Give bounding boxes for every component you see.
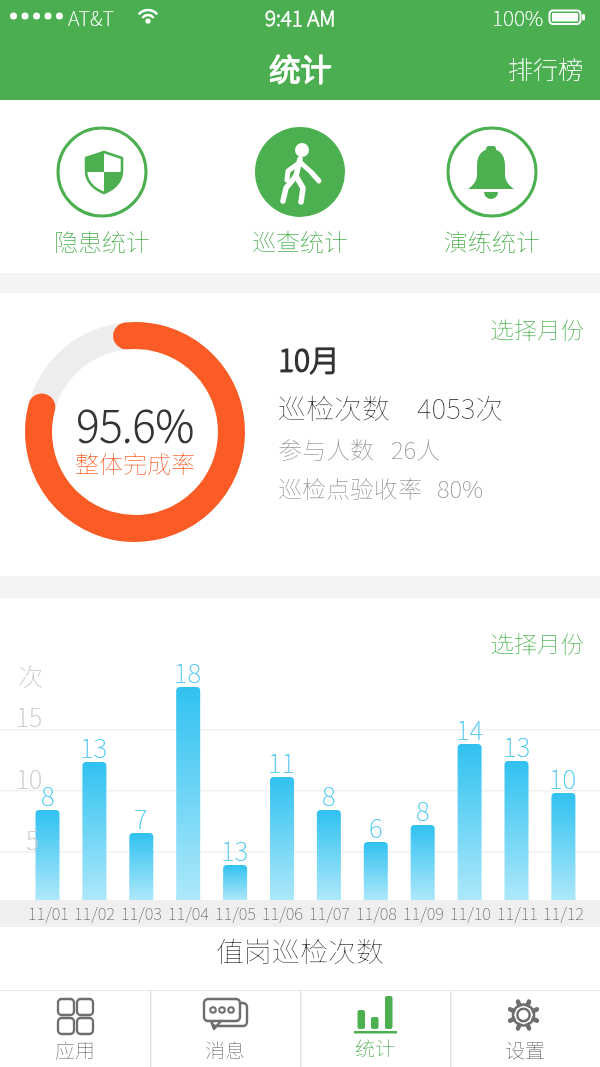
staticText: 巡查统计 bbox=[252, 223, 348, 258]
staticText: 11/09 bbox=[403, 901, 444, 925]
staticText: 11/11 bbox=[497, 901, 538, 925]
staticText: 选择月份 bbox=[490, 312, 584, 346]
staticText: 11/03 bbox=[121, 901, 162, 925]
staticText: 8 bbox=[41, 776, 55, 814]
staticText: 10 bbox=[549, 759, 577, 797]
staticText: 8 bbox=[322, 776, 336, 814]
staticText: 18 bbox=[174, 653, 202, 691]
staticText: 统计 bbox=[269, 46, 331, 91]
staticText: 9:41 AM bbox=[265, 2, 336, 32]
staticText: 巡检次数 bbox=[278, 387, 391, 428]
staticText: 11 bbox=[268, 743, 296, 781]
staticText: 11/10 bbox=[450, 901, 491, 925]
staticText: 巡检点验收率 bbox=[278, 470, 422, 505]
staticText: 隐患统计 bbox=[54, 223, 150, 258]
staticText: 参与人数 bbox=[278, 431, 374, 466]
staticText: 7 bbox=[134, 799, 148, 837]
staticText: 14 bbox=[456, 710, 484, 748]
staticText: 演练统计 bbox=[444, 223, 540, 258]
staticText: 95.6% bbox=[77, 391, 195, 451]
staticText: 11/08 bbox=[356, 901, 397, 925]
staticText: 15 bbox=[16, 698, 43, 734]
staticText: 95.6% bbox=[76, 391, 194, 451]
staticText: 10月 bbox=[278, 336, 340, 379]
staticText: 13 bbox=[221, 831, 249, 869]
staticText: 选择月份 bbox=[490, 626, 584, 660]
staticText: 统计 bbox=[269, 45, 331, 90]
staticText: 13 bbox=[80, 728, 108, 766]
staticText: 5 bbox=[26, 821, 40, 857]
staticText: 11/07 bbox=[309, 901, 350, 925]
staticText: 13 bbox=[503, 727, 531, 765]
staticText: 11/05 bbox=[215, 901, 256, 925]
staticText: 11/02 bbox=[74, 901, 115, 925]
staticText: 值岗巡检次数 bbox=[216, 930, 385, 971]
staticText: 统计 bbox=[355, 1033, 395, 1062]
staticText: 8 bbox=[416, 791, 430, 829]
staticText: 排行榜 bbox=[508, 50, 584, 86]
staticText: 11/01 bbox=[28, 901, 69, 925]
staticText: 26人 bbox=[391, 431, 441, 466]
staticText: 次 bbox=[18, 657, 44, 693]
staticText: 整体完成率 bbox=[75, 445, 195, 480]
staticText: AT&T bbox=[68, 3, 114, 32]
staticText: 11/04 bbox=[168, 901, 209, 925]
staticText: 应用 bbox=[55, 1035, 95, 1064]
staticText: 消息 bbox=[205, 1035, 245, 1064]
staticText: 6 bbox=[369, 808, 383, 846]
staticText: 11/12 bbox=[543, 901, 584, 925]
staticText: 11/06 bbox=[262, 901, 303, 925]
staticText: 10 bbox=[16, 760, 43, 796]
staticText: 设置 bbox=[505, 1035, 545, 1064]
staticText: 95.6% bbox=[76, 392, 194, 452]
staticText: 4053次 bbox=[417, 387, 504, 428]
staticText: 100% bbox=[492, 2, 544, 32]
staticText: 10月 bbox=[278, 337, 340, 380]
staticText: 80% bbox=[437, 470, 484, 505]
staticText: 10月 bbox=[279, 336, 341, 379]
staticText: 统计 bbox=[270, 45, 332, 90]
